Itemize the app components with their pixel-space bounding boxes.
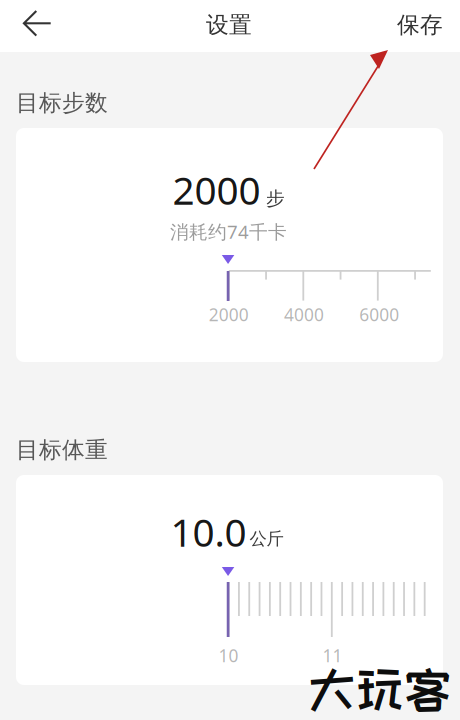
button[interactable]: 设置 [184,0,274,52]
staticText: 10 [219,644,239,667]
staticText: 大玩客 [308,663,452,715]
staticText: 2000 [173,164,261,215]
staticText: 10.0 [171,506,247,557]
staticText: 保存 [397,11,443,39]
staticText: 目标体重 [16,436,108,464]
staticText: 目标步数 [16,89,108,117]
staticText: 6000 [359,303,399,326]
staticText: 消耗约74千卡 [170,219,287,244]
button[interactable]: 保存 [384,0,460,52]
staticText: 公斤 [249,528,283,549]
staticText: 设置 [206,11,252,39]
staticText: 4000 [284,303,324,326]
button[interactable]: Back [0,0,68,52]
staticText: 步 [266,187,285,210]
staticText: 2000 [209,303,249,326]
staticText: 11 [323,644,343,667]
